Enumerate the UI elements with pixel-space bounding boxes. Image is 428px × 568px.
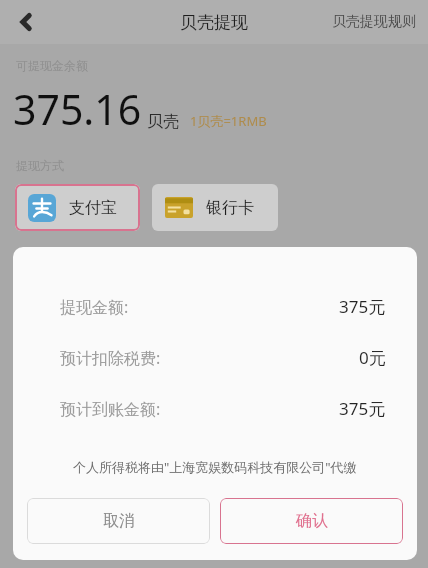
staticText: 支付宝 xyxy=(69,198,117,218)
staticText: 375.16 xyxy=(13,81,142,137)
button[interactable]: 支付宝 xyxy=(15,184,140,231)
staticText: 贝壳提现规则 xyxy=(332,13,416,31)
button[interactable]: 银行卡 xyxy=(152,184,278,231)
staticText: 个人所得税将由"上海宽娱数码科技有限公司"代缴 xyxy=(73,458,357,476)
staticText: 贝壳提现 xyxy=(180,12,248,33)
staticText: 可提现金余额 xyxy=(16,58,88,73)
button[interactable]: 确认 xyxy=(220,498,403,544)
staticText: 银行卡 xyxy=(206,198,254,218)
staticText: 取消 xyxy=(103,511,135,531)
button[interactable]: 贝壳提现规则 xyxy=(332,13,416,31)
staticText: 确认 xyxy=(296,511,328,531)
button[interactable]: 取消 xyxy=(27,498,210,544)
staticText: 提现方式 xyxy=(16,158,64,173)
staticText: 375元 xyxy=(339,397,386,420)
staticText: 预计到账金额: xyxy=(60,398,161,420)
button[interactable]: Back xyxy=(6,2,46,42)
staticText: 0元 xyxy=(359,346,386,369)
staticText: 375元 xyxy=(339,295,386,318)
staticText: 贝壳 xyxy=(147,112,179,132)
staticText: 1贝壳=1RMB xyxy=(190,112,267,130)
staticText: 预计扣除税费: xyxy=(60,347,161,369)
staticText: 提现金额: xyxy=(60,296,129,318)
